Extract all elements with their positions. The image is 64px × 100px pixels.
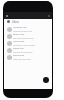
staticText: Elena Ruiz: [13, 54, 25, 57]
staticText: Can we reschedule?: [13, 51, 33, 54]
button[interactable]: Inbox: [4, 19, 52, 24]
staticText: Inbox: [12, 20, 19, 24]
staticText: Derek Hill: [13, 47, 24, 50]
staticText: Carla Diaz: [13, 40, 24, 43]
button[interactable]: Add: [43, 77, 49, 83]
button[interactable]: Derek Hill: [4, 47, 52, 54]
staticText: Sent the files over: [13, 58, 31, 61]
button[interactable]: Elena Ruiz: [4, 54, 52, 61]
staticText: Brian Cole: [13, 33, 25, 36]
button[interactable]: Menu: [5, 14, 9, 18]
staticText: Sounds good to me: [13, 30, 33, 33]
staticText: See you tomorrow at: [13, 37, 34, 40]
button[interactable]: More options: [47, 14, 51, 18]
button[interactable]: Brian Cole: [4, 33, 52, 40]
staticText: Amanda Lee: [13, 26, 27, 29]
staticText: Thanks for the update: [13, 44, 35, 47]
button[interactable]: Amanda Lee: [4, 26, 52, 33]
button[interactable]: Carla Diaz: [4, 40, 52, 47]
